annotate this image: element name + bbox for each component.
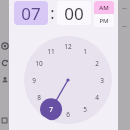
button[interactable]: Search <box>1 42 9 50</box>
button[interactable]: More <box>121 5 128 12</box>
button[interactable]: 3 <box>97 75 107 85</box>
staticText: 12 <box>64 42 72 51</box>
staticText: PM <box>99 17 109 25</box>
staticText: 00 <box>64 2 84 25</box>
staticText: 11 <box>47 47 55 56</box>
staticText: 2 <box>95 59 99 68</box>
staticText: 1 <box>83 47 87 56</box>
button[interactable]: AM <box>94 1 114 14</box>
button[interactable]: 5 <box>80 104 90 114</box>
button[interactable]: 12 <box>63 41 73 51</box>
staticText: 10 <box>35 59 43 68</box>
button[interactable]: 11 <box>46 46 56 56</box>
staticText: 7 <box>49 105 53 114</box>
staticText: : <box>50 2 55 24</box>
staticText: 3 <box>100 76 104 85</box>
button[interactable]: 07 <box>14 1 48 25</box>
button[interactable]: 8 <box>34 92 44 102</box>
staticText: 5 <box>83 105 87 114</box>
button[interactable]: PM <box>94 14 114 27</box>
button[interactable]: 2 <box>92 58 102 68</box>
button[interactable]: Account <box>1 76 9 84</box>
button[interactable]: 9 <box>29 75 39 85</box>
button[interactable]: 7 <box>46 104 56 114</box>
staticText: 8 <box>37 93 41 102</box>
button[interactable]: Options <box>121 23 128 30</box>
button[interactable]: 00 <box>57 1 91 25</box>
button[interactable]: Refresh <box>1 59 9 67</box>
staticText: 4 <box>95 93 99 102</box>
button[interactable]: 4 <box>92 92 102 102</box>
staticText: 9 <box>32 76 36 85</box>
staticText: AM <box>99 4 109 12</box>
button[interactable]: 6 <box>63 109 73 119</box>
button[interactable]: 12 <box>24 36 112 124</box>
button[interactable]: Apps <box>1 117 8 124</box>
staticText: 07 <box>21 2 41 25</box>
button[interactable]: 1 <box>80 46 90 56</box>
staticText: 6 <box>66 110 70 119</box>
button[interactable]: 10 <box>34 58 44 68</box>
